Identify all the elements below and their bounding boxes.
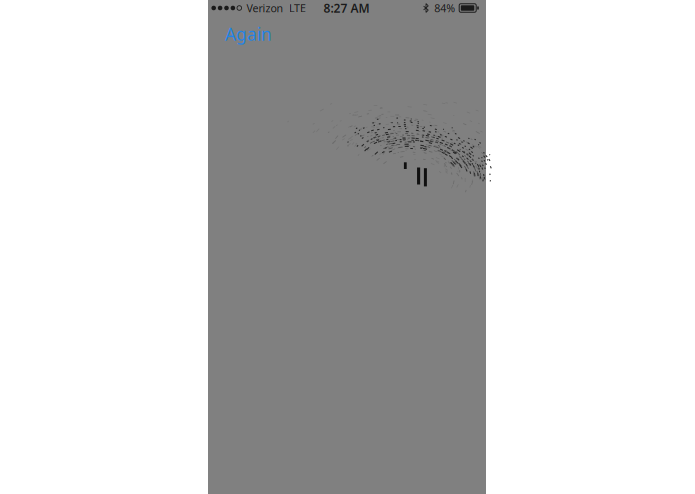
staticText: LTE [289, 1, 306, 15]
staticText: Again [225, 22, 272, 45]
staticText: Verizon [246, 1, 283, 15]
staticText: 84% [434, 1, 455, 15]
button[interactable]: Again [217, 17, 280, 50]
staticText: 8:27 AM [324, 0, 370, 16]
